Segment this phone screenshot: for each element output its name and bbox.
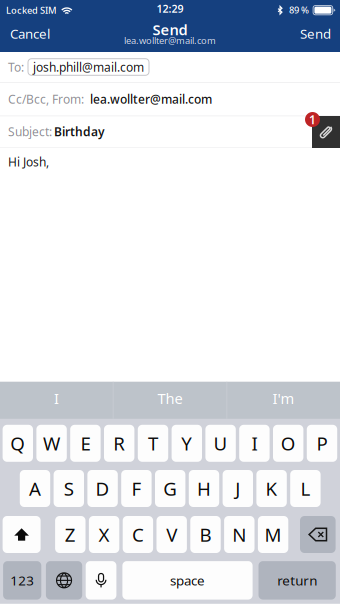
staticText: V <box>166 522 177 547</box>
button[interactable]: L <box>290 470 321 507</box>
staticText: P <box>316 431 327 456</box>
button[interactable]: F <box>121 470 152 507</box>
button[interactable]: Shift <box>3 516 41 553</box>
staticText: lea.wollter@mail.com <box>90 91 212 107</box>
staticText: 123 <box>10 571 34 589</box>
button[interactable]: Q <box>3 425 33 462</box>
button[interactable]: N <box>224 516 254 553</box>
button[interactable]: W <box>36 425 67 462</box>
button[interactable]: K <box>256 470 287 507</box>
button[interactable]: Cancel <box>0 20 60 46</box>
staticText: K <box>266 476 278 501</box>
button[interactable]: 123 <box>3 561 41 600</box>
staticText: G <box>163 476 177 501</box>
button[interactable]: I <box>0 382 113 419</box>
button[interactable]: R <box>104 425 134 462</box>
button[interactable]: A <box>20 470 50 507</box>
staticText: 89 % <box>289 4 309 16</box>
staticText: return <box>277 571 317 589</box>
staticText: Z <box>65 522 76 547</box>
staticText: Send <box>152 20 187 39</box>
staticText: X <box>99 522 110 547</box>
button[interactable]: T <box>138 425 168 462</box>
staticText: S <box>64 476 74 501</box>
button[interactable]: O <box>273 425 303 462</box>
staticText: Subject: <box>8 124 52 140</box>
staticText: Y <box>181 431 192 456</box>
button[interactable]: G <box>155 470 185 507</box>
staticText: Send <box>300 25 331 42</box>
button[interactable]: Send <box>291 20 340 46</box>
button[interactable]: return <box>258 561 336 600</box>
staticText: space <box>170 571 205 589</box>
button[interactable]: The <box>114 382 226 419</box>
button[interactable]: Next keyboard <box>46 561 82 600</box>
button[interactable]: V <box>156 516 187 553</box>
staticText: Birthday <box>54 124 105 140</box>
button[interactable]: E <box>70 425 101 462</box>
button[interactable]: H <box>189 470 219 507</box>
staticText: To: <box>8 59 24 75</box>
staticText: I <box>251 431 257 456</box>
staticText: L <box>300 476 310 501</box>
staticText: B <box>199 522 211 547</box>
button[interactable]: J <box>223 470 253 507</box>
button[interactable]: Y <box>172 425 202 462</box>
staticText: M <box>265 522 282 547</box>
button[interactable]: B <box>190 516 221 553</box>
staticText: H <box>197 476 211 501</box>
staticText: D <box>96 476 110 501</box>
button[interactable]: I'm <box>227 382 340 419</box>
staticText: The <box>157 389 182 408</box>
button[interactable]: C <box>123 516 153 553</box>
staticText: W <box>43 431 60 456</box>
staticText: J <box>235 476 240 501</box>
staticText: U <box>214 431 228 456</box>
staticText: O <box>281 431 296 456</box>
staticText: R <box>113 431 125 456</box>
button[interactable]: I <box>239 425 270 462</box>
button[interactable]: space <box>122 561 253 600</box>
staticText: 12:29 <box>156 1 183 16</box>
button[interactable]: Z <box>55 516 85 553</box>
staticText: josh.phill@mail.com <box>33 59 144 75</box>
staticText: T <box>148 431 158 456</box>
staticText: C <box>132 522 144 547</box>
button[interactable]: M <box>258 516 288 553</box>
button[interactable]: Delete <box>300 516 336 553</box>
staticText: N <box>232 522 246 547</box>
button[interactable]: U <box>205 425 236 462</box>
staticText: Cc/Bcc, From: <box>8 91 84 107</box>
staticText: F <box>131 476 141 501</box>
staticText: Hi Josh, <box>8 154 49 170</box>
button[interactable]: X <box>89 516 119 553</box>
staticText: E <box>80 431 90 456</box>
button[interactable]: Attachments, 1 <box>305 112 340 148</box>
staticText: Cancel <box>10 25 50 42</box>
button[interactable]: S <box>54 470 84 507</box>
button[interactable]: P <box>307 425 337 462</box>
button[interactable]: D <box>87 470 118 507</box>
staticText: I'm <box>273 389 295 408</box>
button[interactable]: Dictation <box>86 561 116 600</box>
staticText: Locked SIM <box>6 4 57 16</box>
staticText: lea.wollter@mail.com <box>124 34 216 47</box>
staticText: Q <box>10 431 25 456</box>
staticText: 1 <box>309 111 316 127</box>
staticText: I <box>54 389 59 408</box>
staticText: A <box>29 476 41 501</box>
